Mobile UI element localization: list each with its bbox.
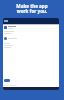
staticText: Make the app work for you. — [16, 3, 48, 15]
